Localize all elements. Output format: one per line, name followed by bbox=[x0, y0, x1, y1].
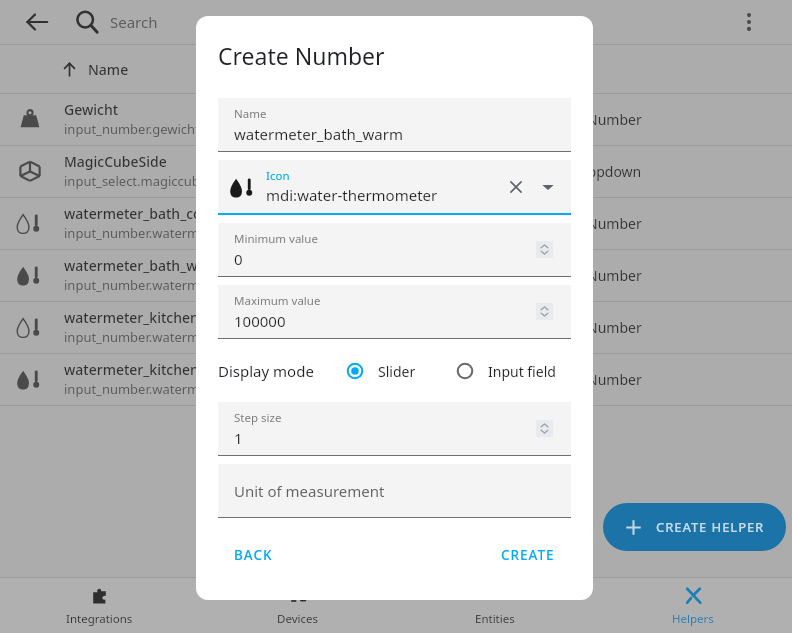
button[interactable]: CREATE HELPER bbox=[603, 503, 786, 551]
button[interactable]: BACK bbox=[218, 538, 289, 572]
staticText: Dropdown bbox=[572, 162, 642, 181]
staticText: Icon bbox=[266, 168, 290, 184]
staticText: Entities bbox=[475, 611, 515, 627]
staticText: watermeter_bath_warm bbox=[234, 124, 403, 144]
staticText: input_number.waterme bbox=[64, 380, 207, 398]
staticText: Search bbox=[110, 12, 158, 32]
button[interactable]: Devices bbox=[198, 578, 396, 633]
button[interactable]: Gewicht bbox=[0, 93, 792, 145]
staticText: 1 bbox=[234, 428, 243, 448]
staticText: Gewicht bbox=[64, 100, 119, 119]
button[interactable]: Increment or decrement bbox=[536, 420, 553, 437]
staticText: watermeter_kitchen_wa bbox=[64, 360, 225, 379]
button[interactable]: Unit of measurement bbox=[218, 464, 571, 517]
staticText: Slider bbox=[378, 362, 416, 381]
staticText: Integrations bbox=[66, 611, 133, 627]
button[interactable]: CREATE bbox=[485, 538, 571, 572]
button[interactable]: MagicCubeSide bbox=[0, 145, 792, 197]
staticText: Create Number bbox=[218, 40, 385, 71]
staticText: input_number.waterme bbox=[64, 328, 207, 346]
button[interactable]: Input field bbox=[454, 360, 556, 382]
button[interactable]: Show icon suggestions bbox=[535, 174, 561, 200]
staticText: Number bbox=[587, 214, 642, 233]
staticText: input_select.magiccube bbox=[64, 172, 208, 190]
button[interactable]: Increment or decrement bbox=[536, 303, 553, 320]
staticText: input_number.waterme bbox=[64, 224, 207, 242]
staticText: 0 bbox=[234, 249, 243, 269]
staticText: watermeter_kitchen_co bbox=[64, 308, 221, 327]
button[interactable]: watermeter_bath_warm bbox=[0, 249, 792, 301]
button[interactable]: Minimum value bbox=[218, 223, 571, 276]
staticText: 100000 bbox=[234, 311, 286, 331]
staticText: Step size bbox=[234, 410, 282, 426]
staticText: BACK bbox=[234, 546, 273, 564]
button[interactable]: Slider bbox=[344, 360, 416, 382]
staticText: Unit of measurement bbox=[234, 481, 385, 501]
button[interactable]: Back bbox=[20, 5, 54, 39]
staticText: watermeter_bath_cold bbox=[64, 204, 215, 223]
staticText: Maximum value bbox=[234, 293, 321, 309]
button[interactable]: Integrations bbox=[0, 578, 198, 633]
button[interactable]: Entities bbox=[396, 578, 594, 633]
staticText: Name bbox=[234, 106, 267, 122]
staticText: Number bbox=[587, 266, 642, 285]
staticText: mdi:water-thermometer bbox=[266, 185, 438, 205]
staticText: Input field bbox=[488, 362, 556, 381]
button[interactable]: Clear icon bbox=[501, 172, 531, 202]
button[interactable]: watermeter_bath_cold bbox=[0, 197, 792, 249]
staticText: CREATE bbox=[501, 546, 555, 564]
staticText: Number bbox=[587, 370, 642, 389]
button[interactable]: Name bbox=[218, 98, 571, 151]
button[interactable]: Increment or decrement bbox=[536, 241, 553, 258]
button[interactable]: watermeter_kitchen_wa bbox=[0, 353, 792, 405]
staticText: Helpers bbox=[672, 611, 714, 627]
staticText: Number bbox=[587, 110, 642, 129]
button[interactable]: Helpers bbox=[594, 578, 792, 633]
staticText: input_number.waterme bbox=[64, 276, 207, 294]
button[interactable]: Icon bbox=[218, 160, 571, 213]
button[interactable]: Search bbox=[72, 7, 102, 37]
button[interactable]: More options bbox=[734, 7, 764, 37]
staticText: watermeter_bath_warm bbox=[64, 256, 225, 275]
staticText: Devices bbox=[277, 611, 318, 627]
staticText: Display mode bbox=[218, 361, 314, 381]
button[interactable]: Maximum value bbox=[218, 285, 571, 338]
staticText: input_number.gewicht bbox=[64, 120, 200, 138]
button[interactable]: Name bbox=[0, 45, 792, 93]
button[interactable]: watermeter_kitchen_co bbox=[0, 301, 792, 353]
staticText: MagicCubeSide bbox=[64, 152, 167, 171]
button[interactable]: Step size bbox=[218, 402, 571, 455]
staticText: Name bbox=[88, 60, 129, 79]
staticText: CREATE HELPER bbox=[656, 518, 765, 536]
staticText: Minimum value bbox=[234, 231, 318, 247]
staticText: Number bbox=[587, 318, 642, 337]
